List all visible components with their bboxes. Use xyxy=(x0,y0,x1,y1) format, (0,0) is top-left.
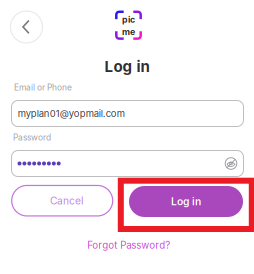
button[interactable]: Forgot Password? xyxy=(69,239,189,251)
staticText: Log in xyxy=(171,195,201,208)
staticText: myplan01@yopmail.com xyxy=(18,108,125,119)
staticText: me xyxy=(122,26,135,37)
staticText: Log in xyxy=(104,57,149,76)
staticText: Password xyxy=(13,132,51,143)
staticText: Email or Phone xyxy=(14,82,72,93)
button[interactable]: Show password xyxy=(225,157,237,169)
button[interactable]: Cancel xyxy=(12,185,113,216)
button[interactable]: Log in xyxy=(129,186,243,217)
staticText: Forgot Password? xyxy=(87,239,170,251)
staticText: Cancel xyxy=(50,194,83,207)
staticText: pic xyxy=(122,14,135,25)
button[interactable]: Back xyxy=(10,10,43,43)
